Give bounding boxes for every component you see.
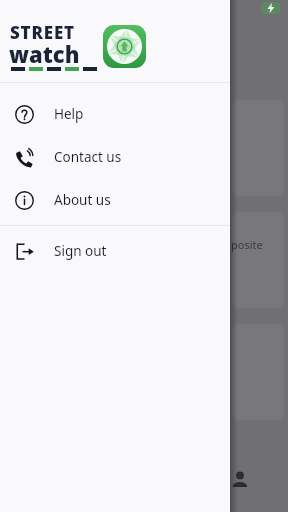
button[interactable]: Help <box>0 92 230 135</box>
button[interactable]: Sign out <box>0 229 230 272</box>
staticText: Contact us <box>54 148 122 166</box>
button[interactable]: About us <box>0 178 230 221</box>
staticText: About us <box>54 191 111 209</box>
button[interactable]: Contact us <box>0 135 230 178</box>
staticText: Sign out <box>54 242 107 260</box>
button[interactable]: Profile <box>231 470 249 488</box>
staticText: posite <box>231 237 263 252</box>
staticText: watch <box>9 39 80 69</box>
staticText: Help <box>54 105 84 123</box>
staticText: STREET <box>10 21 75 44</box>
